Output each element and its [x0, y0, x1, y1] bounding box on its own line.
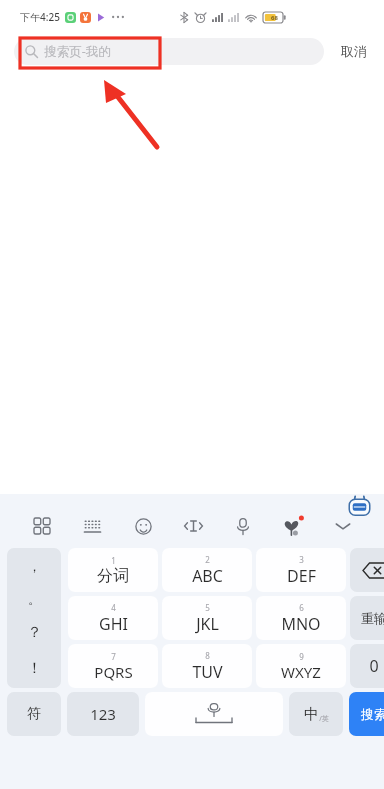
button[interactable]: 7: [68, 644, 158, 688]
staticText: 。: [28, 591, 41, 607]
staticText: 搜索: [361, 706, 384, 722]
button[interactable]: Voice input: [218, 508, 268, 544]
staticText: MNO: [281, 613, 321, 635]
staticText: 取消: [341, 43, 367, 59]
button[interactable]: 9: [256, 644, 346, 688]
staticText: 0: [369, 655, 379, 677]
button[interactable]: 6: [256, 596, 346, 640]
staticText: JKL: [196, 613, 219, 635]
staticText: GHI: [99, 613, 128, 635]
staticText: TUV: [192, 661, 223, 683]
button[interactable]: 8: [162, 644, 252, 688]
staticText: 符: [27, 705, 41, 723]
button[interactable]: Keyboard panels: [16, 508, 67, 544]
button[interactable]: 1: [68, 548, 158, 592]
staticText: 下午4:25: [20, 10, 60, 24]
button[interactable]: 3: [256, 548, 346, 592]
button[interactable]: ，: [7, 548, 61, 688]
staticText: 3: [299, 554, 304, 565]
staticText: DEF: [287, 565, 316, 587]
staticText: PQRS: [94, 662, 133, 682]
staticText: 4: [111, 602, 116, 613]
button[interactable]: Emoji: [118, 508, 168, 544]
staticText: ？: [27, 623, 42, 642]
staticText: 68: [271, 14, 278, 22]
button[interactable]: 重输: [350, 596, 384, 640]
staticText: 6: [299, 602, 304, 613]
button[interactable]: 搜索页-我的: [14, 38, 324, 65]
staticText: ！: [27, 659, 42, 678]
staticText: 2: [205, 554, 210, 565]
button[interactable]: 5: [162, 596, 252, 640]
staticText: /英: [319, 714, 329, 724]
staticText: ，: [28, 558, 41, 574]
staticText: 7: [111, 651, 116, 662]
button[interactable]: Hide keyboard: [318, 508, 368, 544]
staticText: WXYZ: [281, 662, 321, 682]
staticText: 1: [111, 555, 116, 566]
button[interactable]: Move cursor: [168, 508, 218, 544]
staticText: 中: [304, 705, 319, 724]
button[interactable]: 搜索: [349, 692, 384, 736]
button[interactable]: 4: [68, 596, 158, 640]
button[interactable]: Stickers: [268, 508, 318, 544]
staticText: 8: [205, 650, 210, 661]
button[interactable]: 中: [289, 692, 343, 736]
button[interactable]: 取消: [338, 38, 370, 64]
staticText: 9: [299, 651, 304, 662]
staticText: 5: [205, 602, 210, 613]
button[interactable]: Input assistant: [346, 495, 373, 520]
button[interactable]: Space bar, hold for voice input: [145, 692, 283, 736]
staticText: 搜索页-我的: [44, 43, 111, 60]
staticText: 分词: [97, 566, 129, 586]
button[interactable]: Keyboard layout: [67, 508, 118, 544]
staticText: 重输: [361, 610, 384, 626]
staticText: 123: [90, 704, 116, 724]
button[interactable]: 0: [350, 644, 384, 688]
button[interactable]: 2: [162, 548, 252, 592]
staticText: ABC: [192, 565, 223, 587]
button[interactable]: 123: [67, 692, 139, 736]
button[interactable]: 符: [7, 692, 61, 736]
button[interactable]: Backspace: [350, 548, 384, 592]
